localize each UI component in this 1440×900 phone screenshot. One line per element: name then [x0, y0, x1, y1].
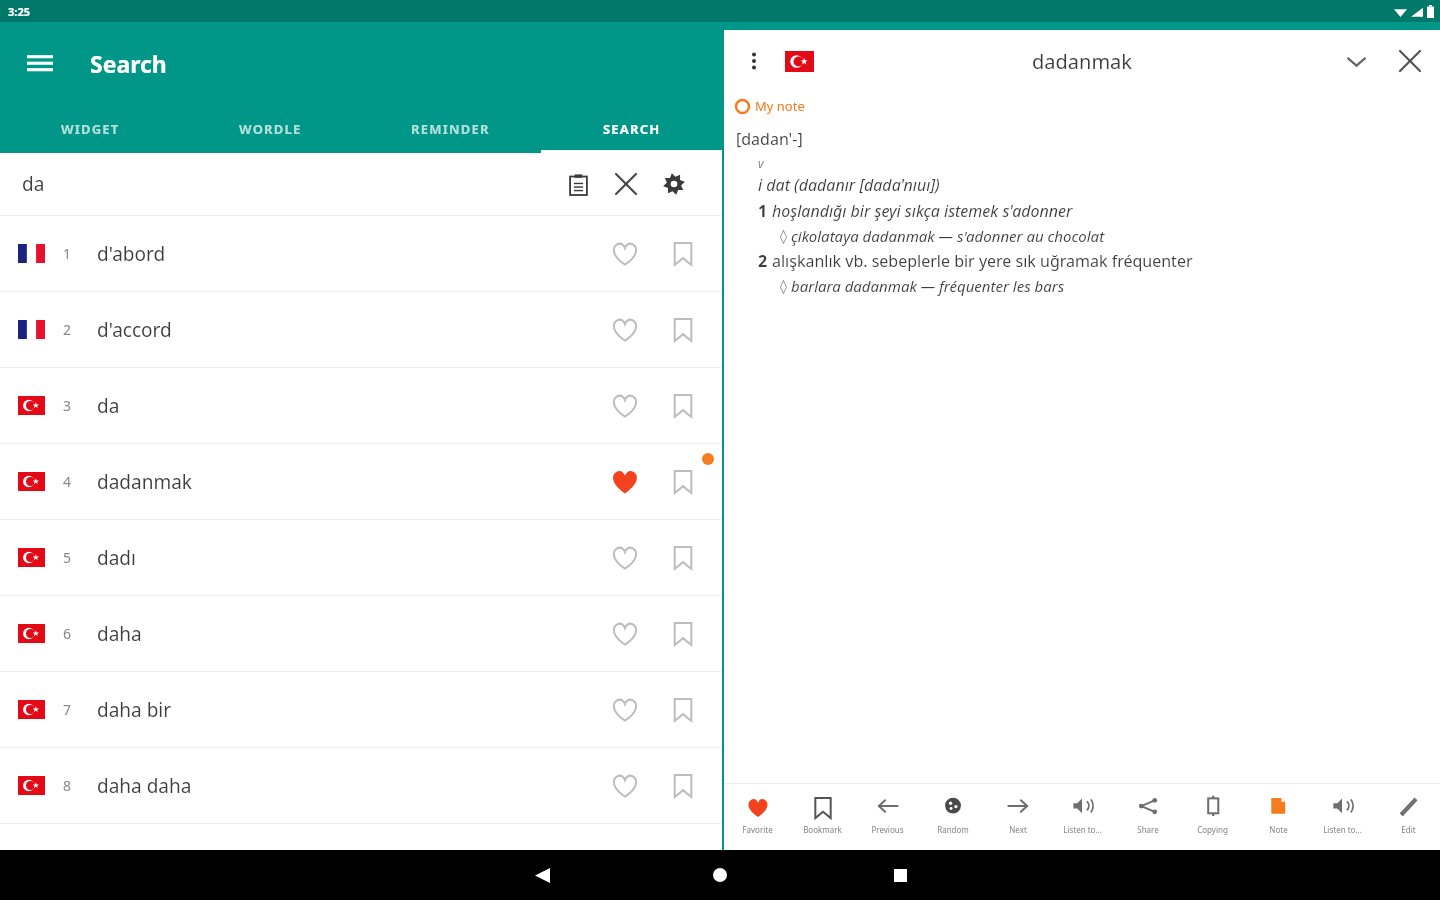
staticText: alışkanlık vb. sebeplerle bir yere sık u…: [772, 250, 1193, 272]
button[interactable]: Bookmark: [656, 759, 710, 813]
staticText: Listen to...: [1323, 824, 1362, 835]
staticText: dadanmak: [1032, 48, 1132, 75]
button[interactable]: Bookmark: [656, 227, 710, 281]
button[interactable]: Random: [920, 784, 985, 846]
staticText: 2: [758, 250, 772, 272]
staticText: SEARCH: [603, 120, 661, 138]
button[interactable]: Favorite: [598, 607, 652, 661]
staticText: My note: [755, 97, 805, 115]
staticText: ◊: [780, 276, 791, 295]
staticText: d'accord: [97, 317, 598, 343]
staticText: daha bir: [97, 697, 598, 723]
button[interactable]: Favorite: [724, 784, 790, 846]
button[interactable]: Back: [522, 855, 562, 895]
staticText: Random: [937, 824, 969, 835]
button[interactable]: SEARCH: [541, 105, 722, 153]
staticText: Next: [1009, 824, 1027, 835]
staticText: d'abord: [97, 241, 598, 267]
staticText: 3:25: [8, 4, 30, 19]
button[interactable]: Favorite: [598, 379, 652, 433]
button[interactable]: Edit: [1375, 784, 1440, 846]
button[interactable]: 6: [0, 596, 722, 671]
button[interactable]: 2: [0, 292, 722, 367]
button[interactable]: Settings: [654, 164, 694, 204]
button[interactable]: Bookmark: [656, 607, 710, 661]
button[interactable]: WIDGET: [0, 105, 180, 153]
staticText: Listen to...: [1063, 824, 1102, 835]
button[interactable]: Listen to...: [1310, 784, 1375, 846]
staticText: v: [758, 155, 764, 171]
button[interactable]: Bookmark: [656, 303, 710, 357]
button[interactable]: Language: [782, 44, 816, 78]
staticText: Share: [1137, 824, 1159, 835]
button[interactable]: Previous: [855, 784, 920, 846]
button[interactable]: Paste: [558, 164, 598, 204]
staticText: hoşlandığı bir şeyi sıkça istemek s'adon…: [772, 200, 1073, 222]
staticText: 6: [63, 624, 72, 643]
button[interactable]: Favorite: [598, 227, 652, 281]
button[interactable]: Favorite: [598, 303, 652, 357]
button[interactable]: My note: [736, 92, 805, 120]
button[interactable]: 1: [0, 216, 722, 291]
staticText: 1: [63, 244, 72, 263]
button[interactable]: Copying: [1180, 784, 1245, 846]
button[interactable]: More options: [736, 43, 772, 79]
staticText: i dat (dadanır [dada'nıuı]): [758, 174, 940, 196]
button[interactable]: Favorite: [598, 455, 652, 509]
staticText: 5: [63, 548, 72, 567]
staticText: Note: [1269, 824, 1288, 835]
button[interactable]: Bookmark: [656, 531, 710, 585]
button[interactable]: 8: [0, 748, 722, 823]
button[interactable]: Bookmark: [656, 683, 710, 737]
button[interactable]: Favorite: [598, 531, 652, 585]
staticText: 1: [758, 200, 772, 222]
staticText: REMINDER: [411, 120, 490, 138]
button[interactable]: Note: [1245, 784, 1310, 846]
staticText: ◊: [780, 226, 791, 245]
staticText: 7: [63, 700, 72, 719]
button[interactable]: Clear: [606, 164, 646, 204]
staticText: Copying: [1197, 824, 1228, 835]
button[interactable]: 4: [0, 444, 722, 519]
staticText: WORDLE: [239, 120, 302, 138]
button[interactable]: Share: [1115, 784, 1180, 846]
staticText: Previous: [871, 824, 904, 835]
button[interactable]: Favorite: [598, 759, 652, 813]
button[interactable]: Close: [1388, 39, 1432, 83]
staticText: barlara dadanmak — fréquenter les bars: [791, 276, 1065, 296]
button[interactable]: Collapse: [1334, 39, 1378, 83]
button[interactable]: 3: [0, 368, 722, 443]
staticText: 3: [63, 396, 72, 415]
button[interactable]: Listen to...: [1050, 784, 1115, 846]
staticText: daha daha: [97, 773, 598, 799]
staticText: Favorite: [742, 824, 773, 835]
staticText: Bookmark: [803, 824, 842, 835]
button[interactable]: 5: [0, 520, 722, 595]
staticText: Edit: [1401, 824, 1416, 835]
staticText: çikolataya dadanmak — s'adonner au choco…: [791, 226, 1105, 246]
button[interactable]: Bookmark: [656, 379, 710, 433]
button[interactable]: Menu: [18, 42, 62, 86]
button[interactable]: Bookmark: [656, 455, 710, 509]
staticText: 2: [63, 320, 72, 339]
staticText: dadanmak: [97, 469, 598, 495]
button[interactable]: REMINDER: [360, 105, 541, 153]
staticText: [dadan'-]: [736, 128, 803, 150]
staticText: WIDGET: [61, 120, 120, 138]
staticText: da: [22, 171, 45, 197]
staticText: dadı: [97, 545, 598, 571]
button[interactable]: WORDLE: [180, 105, 360, 153]
button[interactable]: Bookmark: [790, 784, 855, 846]
button[interactable]: Favorite: [598, 683, 652, 737]
staticText: daha: [97, 621, 598, 647]
staticText: 8: [63, 776, 72, 795]
staticText: Search: [90, 48, 167, 79]
button[interactable]: Recents: [880, 855, 920, 895]
button[interactable]: 7: [0, 672, 722, 747]
button[interactable]: Home: [700, 855, 740, 895]
button[interactable]: Next: [985, 784, 1050, 846]
staticText: 4: [63, 472, 72, 491]
staticText: da: [97, 393, 598, 419]
